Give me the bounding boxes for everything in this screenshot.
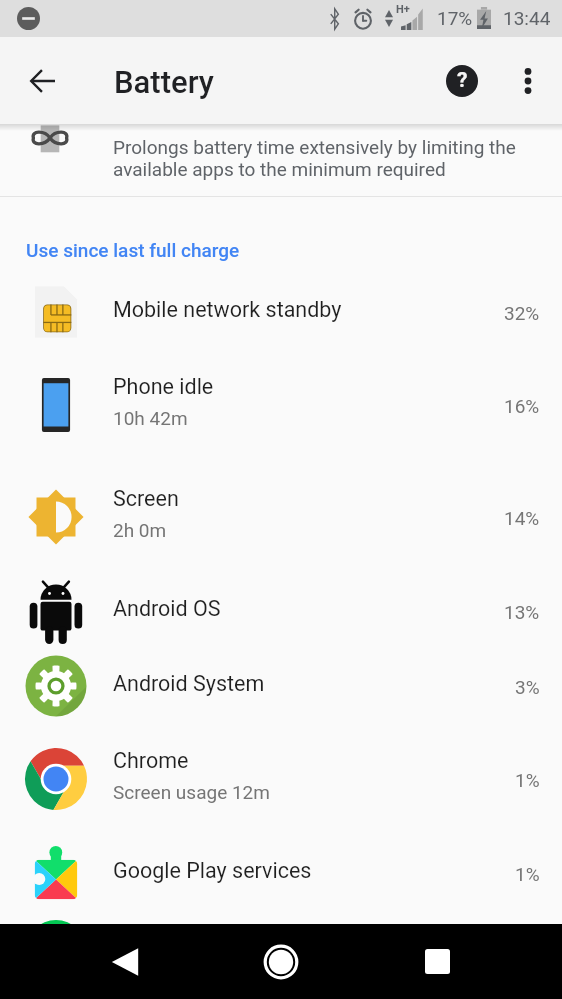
staticText: H+ (396, 3, 410, 16)
button[interactable]: Screen (0, 461, 562, 573)
staticText: Use since last full charge (26, 239, 240, 261)
staticText: Screen usage 12m (113, 781, 270, 803)
staticText: Google Play services (113, 858, 312, 883)
staticText: 16% (504, 395, 540, 417)
staticText: Battery (114, 64, 214, 100)
staticText: Phone idle (113, 374, 214, 399)
staticText: Chrome (113, 748, 189, 773)
button[interactable]: Help (437, 56, 487, 106)
staticText: ? (457, 68, 468, 93)
button[interactable]: More options (503, 56, 553, 106)
staticText: Mobile network standby (113, 297, 342, 322)
staticText: 1% (515, 863, 540, 885)
button[interactable]: Mobile network standby (0, 274, 562, 349)
staticText: 14% (504, 507, 540, 529)
staticText: 2h 0m (113, 519, 167, 541)
staticText: Android OS (113, 596, 221, 621)
button[interactable]: Back (55, 924, 195, 999)
button[interactable]: Android System (0, 648, 562, 723)
staticText: 32% (504, 302, 540, 324)
button[interactable]: Home (211, 924, 351, 999)
staticText: 1% (515, 769, 540, 791)
staticText: Prolongs battery time extensively by lim… (113, 136, 516, 158)
staticText: 17% (437, 7, 473, 29)
staticText: Screen (113, 486, 179, 511)
button[interactable]: Google Play services (0, 835, 562, 910)
button[interactable]: Navigate up (15, 53, 71, 109)
staticText: available apps to the minimum required (113, 158, 446, 180)
staticText: 3% (515, 676, 540, 698)
staticText: Android System (113, 671, 265, 696)
button[interactable]: Android OS (0, 573, 562, 648)
button[interactable]: Prolongs battery time extensively by lim… (0, 124, 562, 196)
staticText: 13:44 (503, 7, 551, 29)
button[interactable]: Phone idle (0, 349, 562, 461)
staticText: 10h 42m (113, 407, 188, 429)
button[interactable]: Recent apps (367, 924, 507, 999)
staticText: 13% (504, 601, 540, 623)
button[interactable]: Chrome (0, 723, 562, 835)
